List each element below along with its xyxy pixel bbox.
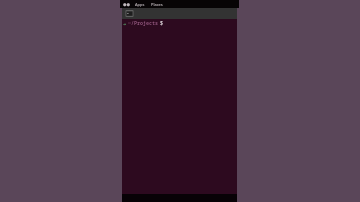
staticText: Apps (135, 2, 145, 7)
button[interactable]: ●● (120, 0, 239, 8)
button[interactable]: ➜ (122, 19, 237, 194)
staticText: Places (151, 2, 163, 7)
staticText: ~/Projects (128, 20, 159, 27)
staticText: ●● (123, 2, 130, 7)
button[interactable]: Terminal window icon (125, 9, 134, 18)
staticText: $ (160, 20, 164, 27)
staticText: ➜ (123, 21, 127, 27)
button[interactable]: Terminal window icon (122, 8, 237, 19)
